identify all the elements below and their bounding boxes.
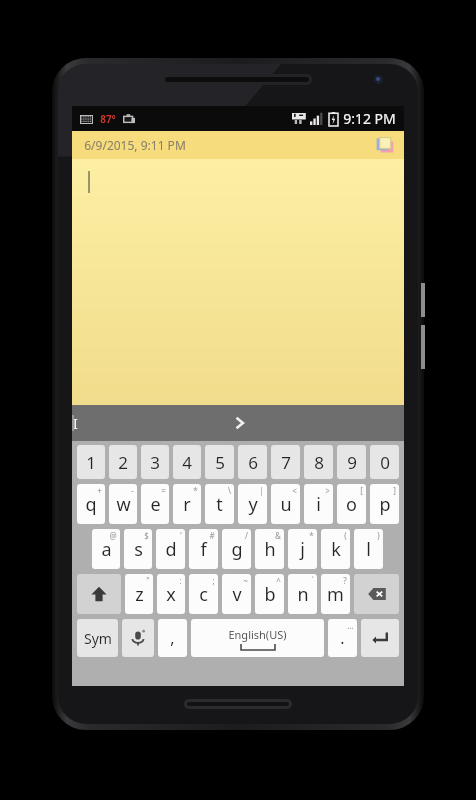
button[interactable]: h: [255, 529, 284, 569]
button[interactable]: ,: [158, 619, 187, 657]
staticText: t: [216, 492, 223, 517]
button[interactable]: a: [92, 529, 120, 569]
button[interactable]: 8: [304, 445, 333, 479]
button[interactable]: b: [255, 574, 284, 614]
button[interactable]: Enter: [361, 619, 399, 657]
staticText: l: [366, 537, 371, 562]
staticText: z: [135, 582, 144, 607]
button[interactable]: u: [271, 484, 300, 524]
staticText: h: [264, 537, 276, 562]
button[interactable]: 1: [77, 445, 105, 479]
staticText: g: [231, 537, 243, 562]
button[interactable]: t: [205, 484, 234, 524]
button[interactable]: Notes list: [374, 134, 396, 156]
staticText: ]: [393, 485, 396, 496]
staticText: 6/9/2015, 9:11 PM: [84, 137, 186, 153]
button[interactable]: 0: [370, 445, 399, 479]
button[interactable]: More suggestions: [74, 405, 404, 441]
staticText: q: [85, 492, 97, 517]
button[interactable]: 5: [205, 445, 234, 479]
staticText: y: [248, 492, 258, 517]
staticText: @: [109, 530, 117, 541]
button[interactable]: o: [337, 484, 366, 524]
staticText: :: [179, 575, 182, 586]
button[interactable]: 7: [271, 445, 300, 479]
button[interactable]: 2: [109, 445, 137, 479]
staticText: 2: [118, 451, 128, 474]
staticText: x: [166, 582, 176, 607]
staticText: [: [360, 485, 363, 496]
staticText: &: [275, 530, 281, 541]
staticText: .: [340, 627, 345, 649]
button[interactable]: 4: [173, 445, 201, 479]
staticText: 6: [248, 451, 258, 474]
button[interactable]: Backspace: [354, 574, 399, 614]
button[interactable]: d: [156, 529, 185, 569]
staticText: p: [379, 492, 391, 517]
button[interactable]: i: [304, 484, 333, 524]
staticText: ": [146, 575, 150, 586]
button[interactable]: [72, 159, 404, 405]
staticText: 0: [380, 451, 390, 474]
staticText: $: [144, 530, 149, 541]
staticText: ?: [343, 575, 347, 586]
staticText: c: [199, 582, 208, 607]
staticText: -: [131, 485, 134, 496]
button[interactable]: 9: [337, 445, 366, 479]
staticText: =: [161, 485, 166, 496]
staticText: *: [309, 530, 314, 541]
button[interactable]: Voice input: [122, 619, 154, 657]
button[interactable]: l: [354, 529, 383, 569]
staticText: 1: [86, 451, 96, 474]
button[interactable]: k: [321, 529, 350, 569]
staticText: ,: [170, 627, 175, 649]
button[interactable]: m: [321, 574, 350, 614]
staticText: #: [209, 530, 215, 541]
button[interactable]: r: [173, 484, 201, 524]
button[interactable]: Sym: [77, 619, 118, 657]
staticText: Sym: [84, 629, 112, 648]
button[interactable]: z: [125, 574, 153, 614]
staticText: |: [259, 485, 264, 496]
button[interactable]: Shift: [77, 574, 121, 614]
staticText: i: [316, 492, 321, 517]
staticText: s: [134, 537, 143, 562]
staticText: *: [193, 485, 198, 496]
button[interactable]: c: [189, 574, 218, 614]
button[interactable]: v: [222, 574, 251, 614]
staticText: ): [377, 530, 380, 541]
button[interactable]: g: [222, 529, 251, 569]
staticText: /: [245, 530, 248, 541]
button[interactable]: 3: [141, 445, 169, 479]
staticText: 9: [347, 451, 357, 474]
button[interactable]: 6: [238, 445, 267, 479]
staticText: j: [300, 537, 305, 562]
staticText: u: [280, 492, 292, 517]
button[interactable]: j: [288, 529, 317, 569]
button[interactable]: .: [328, 619, 357, 657]
staticText: w: [116, 492, 131, 517]
button[interactable]: f: [189, 529, 218, 569]
button[interactable]: e: [141, 484, 169, 524]
staticText: ;: [212, 575, 215, 586]
staticText: d: [165, 537, 177, 562]
button[interactable]: English(US): [191, 619, 324, 657]
button[interactable]: y: [238, 484, 267, 524]
staticText: ': [180, 530, 182, 541]
button[interactable]: x: [157, 574, 185, 614]
button[interactable]: s: [124, 529, 152, 569]
staticText: 87°: [100, 112, 116, 126]
button[interactable]: n: [288, 574, 317, 614]
staticText: >: [325, 485, 330, 496]
staticText: 7: [281, 451, 291, 474]
staticText: 9:12 PM: [343, 109, 396, 128]
button[interactable]: w: [109, 484, 137, 524]
staticText: \: [228, 485, 231, 496]
button[interactable]: q: [77, 484, 105, 524]
staticText: r: [183, 492, 191, 517]
staticText: b: [264, 582, 276, 607]
staticText: a: [101, 537, 112, 562]
staticText: v: [232, 582, 242, 607]
staticText: m: [327, 582, 344, 607]
button[interactable]: p: [370, 484, 399, 524]
